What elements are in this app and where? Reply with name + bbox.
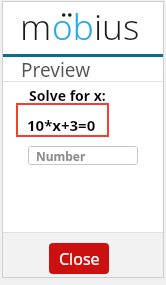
staticText: ob (52, 3, 94, 51)
staticText: Number (36, 148, 86, 164)
staticText: Solve for x: (29, 86, 106, 105)
staticText: m (20, 3, 52, 51)
button[interactable]: Number (28, 146, 138, 165)
staticText: 10*x+3=0 (27, 115, 96, 135)
staticText: Preview (21, 57, 91, 83)
staticText: ius (94, 3, 140, 51)
button[interactable]: Close (49, 243, 109, 274)
staticText: Close (59, 248, 100, 270)
